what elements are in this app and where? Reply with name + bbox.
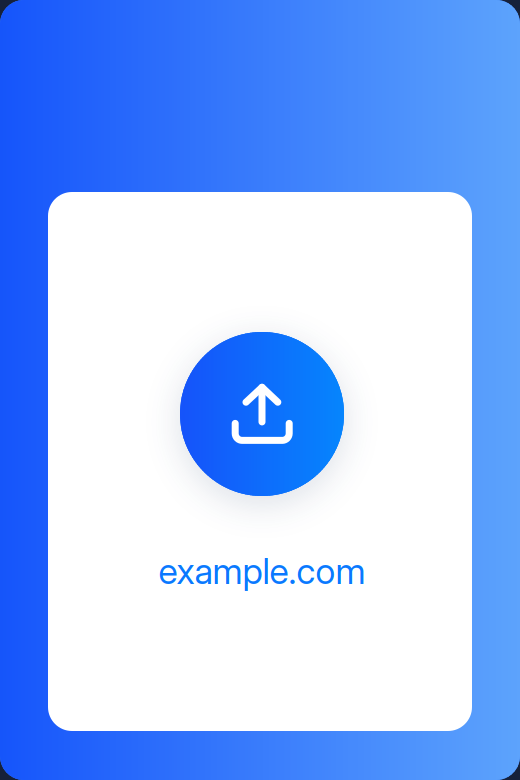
staticText: example.com bbox=[158, 549, 365, 593]
button[interactable]: Share bbox=[180, 332, 344, 496]
